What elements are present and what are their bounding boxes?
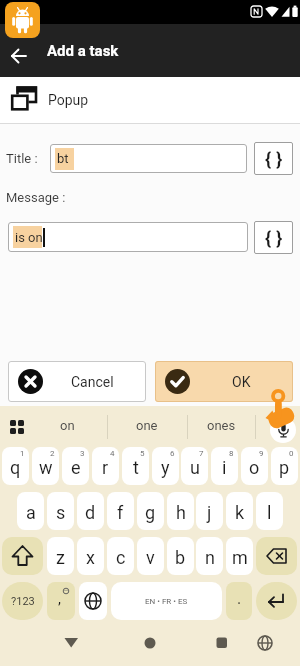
staticText: . [237, 589, 242, 608]
staticText: { } [265, 148, 283, 170]
button[interactable]: on [28, 406, 107, 444]
staticText: z [56, 547, 65, 568]
staticText: h [176, 502, 186, 523]
button[interactable]: s [47, 492, 74, 530]
staticText: { } [265, 227, 283, 249]
button[interactable]: y [152, 447, 179, 485]
staticText: one [136, 418, 158, 433]
button[interactable]: h [167, 492, 194, 530]
staticText: p [279, 457, 290, 478]
button[interactable]: w [32, 447, 59, 485]
button[interactable]: e [62, 447, 89, 485]
button[interactable]: bt [50, 144, 247, 173]
staticText: 7 [199, 449, 204, 458]
button[interactable]: i [211, 447, 238, 485]
staticText: , [58, 590, 61, 608]
button[interactable]: . [226, 582, 252, 620]
button[interactable] [4, 42, 34, 70]
button[interactable]: EN • FR • ES [111, 582, 222, 620]
staticText: EN • FR • ES [145, 597, 188, 606]
button[interactable]: o [241, 447, 268, 485]
staticText: v [146, 547, 155, 568]
button[interactable]: ones [187, 406, 255, 444]
staticText: bt [57, 151, 69, 166]
button[interactable]: v [137, 537, 164, 575]
staticText: y [161, 457, 170, 478]
button[interactable] [256, 537, 297, 575]
button[interactable]: j [196, 492, 223, 530]
staticText: r [102, 457, 109, 478]
staticText: e [71, 457, 81, 478]
staticText: Cancel [71, 374, 114, 390]
button[interactable] [270, 417, 296, 443]
button[interactable]: f [107, 492, 134, 530]
staticText: j [207, 502, 212, 523]
staticText: 8 [229, 449, 234, 458]
button[interactable] [57, 630, 86, 658]
button[interactable] [2, 537, 43, 575]
button[interactable]: Cancel [8, 361, 146, 402]
staticText: 4 [110, 449, 115, 458]
button[interactable]: r [92, 447, 119, 485]
staticText: 9 [259, 449, 264, 458]
staticText: Add a task [47, 42, 119, 60]
button[interactable]: z [47, 537, 74, 575]
button[interactable]: m [226, 537, 253, 575]
staticText: w [39, 457, 53, 478]
button[interactable]: p [271, 447, 298, 485]
button[interactable]: ?123 [2, 582, 43, 620]
button[interactable]: q [2, 447, 29, 485]
staticText: q [10, 457, 21, 478]
staticText: Popup [48, 92, 89, 108]
button[interactable]: x [77, 537, 104, 575]
staticText: k [235, 502, 245, 523]
button[interactable]: u [181, 447, 208, 485]
button[interactable]: { } [254, 142, 293, 175]
button[interactable] [136, 630, 165, 658]
button[interactable]: one [107, 406, 187, 444]
staticText: o [249, 457, 260, 478]
button[interactable]: b [167, 537, 194, 575]
staticText: t [133, 457, 139, 478]
button[interactable] [3, 413, 31, 441]
staticText: m [232, 547, 248, 568]
staticText: 3 [80, 449, 85, 458]
button[interactable]: g [137, 492, 164, 530]
button[interactable]: { } [254, 221, 293, 254]
staticText: i [222, 457, 227, 478]
staticText: is on [15, 230, 43, 245]
button[interactable]: , [47, 582, 75, 620]
button[interactable]: k [226, 492, 253, 530]
button[interactable] [5, 2, 40, 38]
button[interactable]: a [17, 492, 44, 530]
staticText: 0 [289, 449, 294, 458]
staticText: c [116, 547, 126, 568]
staticText: f [117, 502, 124, 523]
staticText: b [175, 547, 186, 568]
button[interactable]: n [196, 537, 223, 575]
staticText: u [190, 457, 200, 478]
button[interactable]: c [107, 537, 134, 575]
staticText: 2 [50, 449, 55, 458]
button[interactable]: d [77, 492, 104, 530]
button[interactable]: t [122, 447, 149, 485]
staticText: OK [232, 374, 251, 390]
staticText: l [267, 502, 272, 523]
button[interactable] [0, 77, 300, 124]
button[interactable]: Add a task [40, 24, 200, 77]
staticText: Message : [6, 190, 66, 205]
button[interactable]: l [256, 492, 283, 530]
button[interactable]: is on [8, 222, 248, 252]
button[interactable] [207, 630, 236, 658]
button[interactable] [79, 582, 107, 620]
button[interactable] [251, 630, 280, 658]
staticText: 5 [140, 449, 145, 458]
button[interactable] [256, 582, 297, 620]
button[interactable]: OK [155, 361, 293, 402]
staticText: x [86, 547, 95, 568]
staticText: n [205, 547, 215, 568]
staticText: g [145, 502, 156, 523]
staticText: a [26, 502, 36, 523]
staticText: ones [207, 418, 236, 433]
staticText: d [85, 502, 96, 523]
